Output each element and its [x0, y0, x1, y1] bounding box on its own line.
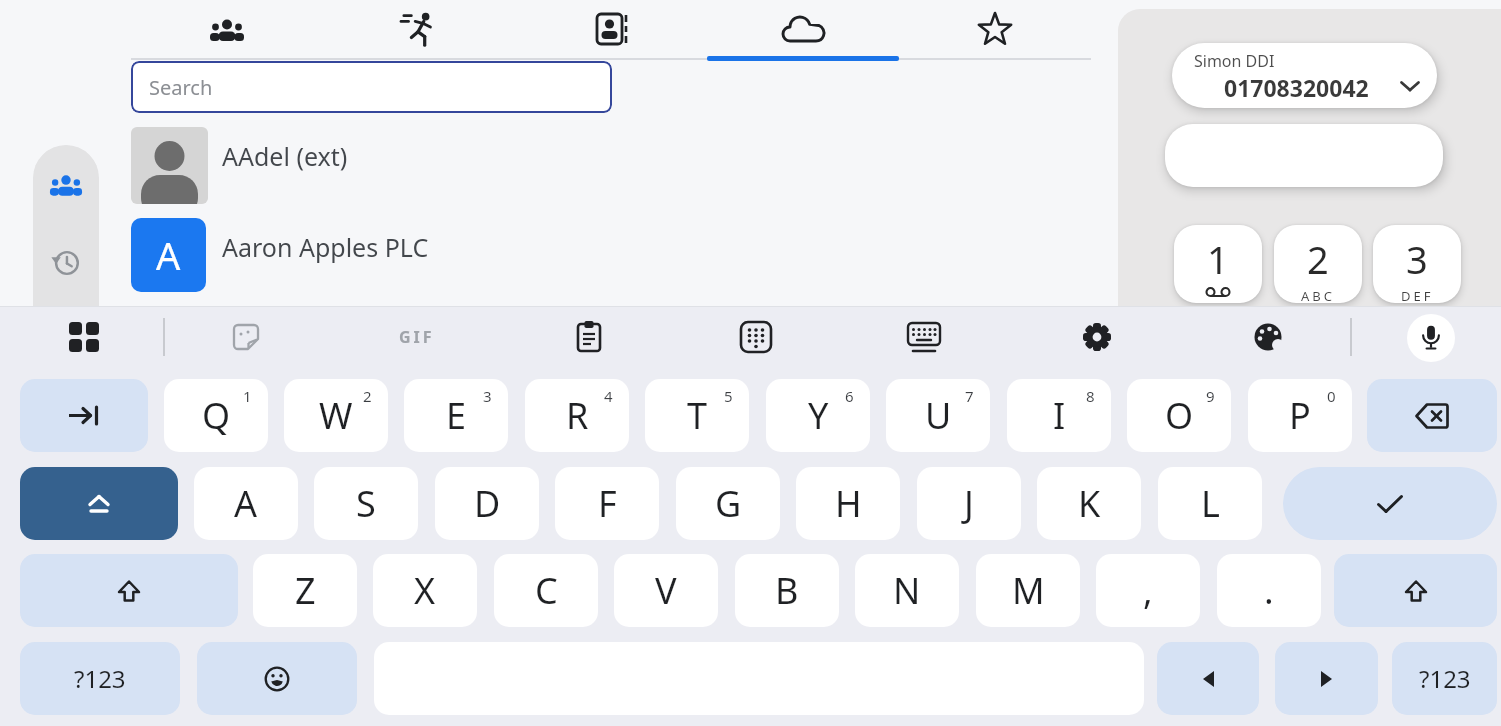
button[interactable] [707, 0, 899, 57]
button[interactable]: . [1217, 554, 1321, 627]
button[interactable]: 2 [1274, 225, 1362, 303]
staticText: B [775, 566, 799, 615]
staticText: 2 [1307, 233, 1329, 285]
staticText: O [1165, 391, 1194, 440]
button[interactable] [1244, 314, 1292, 360]
button[interactable]: T [645, 379, 749, 452]
button[interactable]: J [917, 467, 1021, 540]
button[interactable] [899, 0, 1091, 57]
button[interactable]: I [1007, 379, 1111, 452]
staticText: U [925, 391, 952, 440]
button[interactable]: N [855, 554, 959, 627]
staticText: E [446, 391, 467, 440]
button[interactable]: X [373, 554, 477, 627]
staticText: W [319, 391, 353, 440]
staticText: A [234, 479, 258, 528]
button[interactable] [44, 245, 88, 281]
staticText: T [687, 391, 708, 440]
staticText: 0 [1327, 386, 1336, 406]
button[interactable]: U [886, 379, 990, 452]
button[interactable]: V [614, 554, 718, 627]
staticText: ?123 [74, 662, 126, 695]
button[interactable] [565, 314, 613, 360]
staticText: Q [202, 391, 231, 440]
button[interactable]: Aaron Apples PLC [206, 218, 906, 275]
button[interactable] [197, 642, 357, 715]
button[interactable] [20, 379, 148, 452]
button[interactable] [1334, 554, 1497, 627]
staticText: DEF [1401, 287, 1434, 303]
button[interactable]: H [796, 467, 900, 540]
staticText: 3 [483, 386, 492, 406]
button[interactable]: L [1158, 467, 1262, 540]
button[interactable] [222, 314, 270, 360]
staticText: C [535, 566, 558, 615]
staticText: GIF [399, 326, 435, 348]
button[interactable]: D [435, 467, 539, 540]
button[interactable] [1165, 124, 1443, 187]
staticText: 01708320042 [1224, 72, 1369, 103]
staticText: R [566, 391, 589, 440]
staticText: 3 [1406, 233, 1428, 285]
staticText: K [1078, 479, 1101, 528]
staticText: 1 [243, 386, 252, 406]
button[interactable]: R [525, 379, 629, 452]
button[interactable] [515, 0, 707, 57]
button[interactable]: , [1096, 554, 1200, 627]
button[interactable] [1275, 642, 1378, 715]
button[interactable] [1283, 467, 1497, 540]
button[interactable]: Simon DDI [1172, 43, 1437, 108]
button[interactable]: C [494, 554, 598, 627]
staticText: 9 [1206, 386, 1215, 406]
button[interactable] [1157, 642, 1259, 715]
staticText: , [1143, 566, 1153, 615]
button[interactable]: Search [131, 61, 612, 113]
button[interactable]: Z [253, 554, 357, 627]
button[interactable]: F [555, 467, 659, 540]
button[interactable] [1367, 379, 1497, 452]
staticText: 7 [965, 386, 974, 406]
staticText: S [356, 479, 376, 528]
button[interactable]: M [976, 554, 1080, 627]
button[interactable]: P [1248, 379, 1352, 452]
staticText: V [655, 566, 677, 615]
button[interactable]: Q [164, 379, 268, 452]
staticText: M [1012, 566, 1045, 615]
staticText: 2 [363, 386, 372, 406]
button[interactable]: W [284, 379, 388, 452]
staticText: Aaron Apples PLC [222, 230, 429, 264]
button[interactable] [1073, 314, 1121, 360]
button[interactable]: S [314, 467, 418, 540]
button[interactable] [900, 314, 948, 360]
button[interactable]: AAdel (ext) [208, 127, 908, 185]
staticText: 6 [845, 386, 854, 406]
button[interactable] [732, 314, 780, 360]
button[interactable]: K [1037, 467, 1141, 540]
button[interactable]: A [194, 467, 298, 540]
button[interactable] [44, 168, 88, 200]
button[interactable]: ?123 [20, 642, 180, 715]
button[interactable]: E [404, 379, 508, 452]
button[interactable]: 3 [1373, 225, 1461, 303]
staticText: 8 [1086, 386, 1095, 406]
staticText: . [1264, 566, 1274, 615]
button[interactable]: ?123 [1392, 642, 1497, 715]
button[interactable]: G [676, 467, 780, 540]
button[interactable] [60, 314, 108, 360]
button[interactable]: B [735, 554, 839, 627]
button[interactable] [323, 0, 515, 57]
button[interactable]: O [1127, 379, 1231, 452]
button[interactable]: Y [766, 379, 870, 452]
button[interactable] [1407, 314, 1455, 362]
staticText: F [598, 479, 617, 528]
button[interactable] [131, 0, 323, 57]
staticText: D [474, 479, 501, 528]
button[interactable]: GIF [390, 314, 444, 360]
staticText: H [835, 479, 862, 528]
staticText: Search [149, 74, 213, 101]
staticText: 1 [1207, 233, 1229, 285]
button[interactable] [20, 467, 178, 540]
button[interactable] [20, 554, 238, 627]
button[interactable]: 1 [1174, 225, 1262, 303]
